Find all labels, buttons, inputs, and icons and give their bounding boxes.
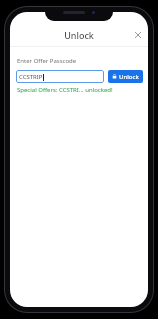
staticText: Unlock — [119, 73, 139, 81]
staticText: Special Offers: CCSTRI... unlocked! — [17, 86, 113, 94]
staticText: Enter Offer Passcode — [17, 57, 77, 65]
staticText: CCSTRIP — [19, 73, 43, 81]
button[interactable]: Close — [131, 28, 145, 42]
staticText: Unlock — [64, 29, 94, 41]
button[interactable]: CCSTRIP — [16, 70, 104, 83]
button[interactable]: Unlock — [108, 70, 143, 83]
